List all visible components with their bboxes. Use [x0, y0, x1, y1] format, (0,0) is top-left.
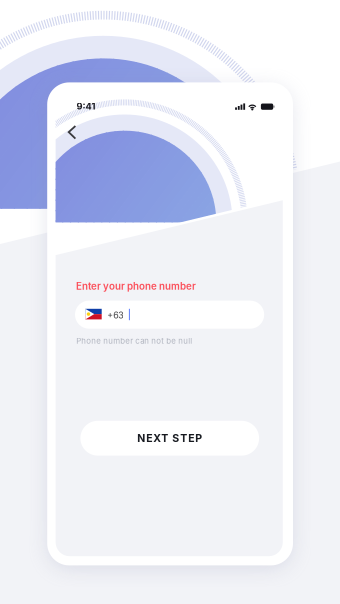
staticText: +63 — [107, 310, 123, 320]
staticText: Phone number can not be null — [76, 336, 192, 346]
button[interactable]: NEXT STEP — [80, 421, 259, 456]
staticText: NEXT STEP — [137, 432, 202, 444]
button[interactable]: Back — [62, 121, 88, 145]
staticText: 9:41 — [76, 101, 95, 112]
staticText: Enter your phone number — [76, 280, 196, 292]
button[interactable]: +63 — [75, 301, 264, 329]
